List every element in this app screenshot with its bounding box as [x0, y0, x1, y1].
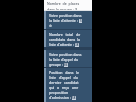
- staticText: 86: [64, 63, 68, 67]
- staticText: Votre position dans: [49, 13, 82, 18]
- staticText: 3: [75, 7, 78, 10]
- button[interactable]: Votre position dans: [44, 50, 92, 67]
- staticText: Nombre total de: [49, 32, 81, 37]
- staticText: proposition: [49, 90, 69, 95]
- staticText: Position dans le: [49, 70, 80, 75]
- staticText: d'admission :: [49, 95, 71, 100]
- staticText: liste d'appel du: [49, 75, 78, 80]
- staticText: candidats dans la: [49, 37, 80, 42]
- staticText: groupe :: [49, 62, 63, 67]
- staticText: Votre position dans: [49, 52, 82, 57]
- staticText: liste d'attente :: [49, 42, 74, 47]
- staticText: dans le groupe :: [47, 7, 74, 10]
- staticText: 5: [80, 19, 82, 23]
- button[interactable]: Nombre total de: [44, 30, 92, 47]
- staticText: qui a reçu une: [49, 85, 79, 90]
- staticText: dernier candidat: [49, 80, 79, 85]
- staticText: Nombre de places: [47, 1, 80, 6]
- staticText: la liste d'appel du: [49, 57, 79, 62]
- staticText: 58: [72, 96, 76, 100]
- button[interactable]: Votre position dans: [44, 11, 92, 29]
- button[interactable]: Position dans le: [44, 68, 92, 102]
- staticText: 38: [75, 43, 79, 47]
- button[interactable]: Nombre de places: [44, 0, 92, 10]
- staticText: ⊕: [49, 24, 52, 28]
- staticText: la liste d'attente :: [49, 18, 78, 23]
